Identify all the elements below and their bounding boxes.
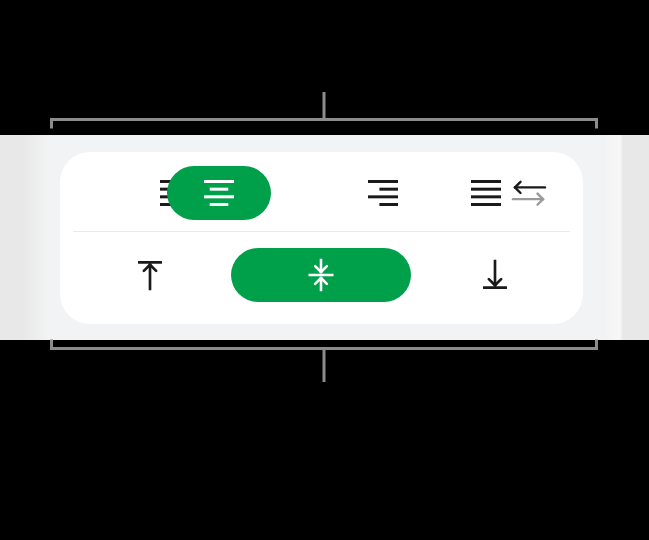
button[interactable]: Align middle [231,248,411,302]
button[interactable]: Align right [352,166,414,220]
button[interactable]: Justify [455,166,517,220]
button[interactable]: Align left [144,166,206,220]
button[interactable]: Align top [122,248,178,302]
button[interactable]: Align center [167,166,271,220]
button[interactable]: Text direction [498,166,560,220]
button[interactable]: Align bottom [467,248,523,302]
